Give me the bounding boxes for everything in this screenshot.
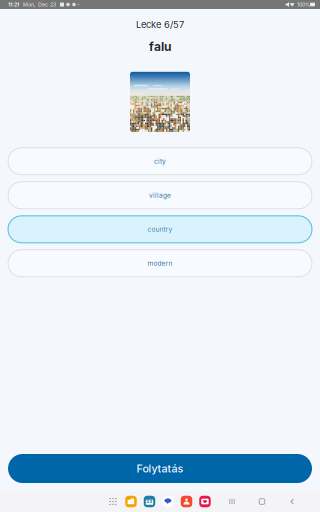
- staticText: city: [154, 157, 166, 165]
- button[interactable]: modern: [8, 250, 312, 277]
- staticText: Mon, Dec 23: [19, 1, 56, 8]
- button[interactable]: Contacts: [180, 495, 192, 507]
- button[interactable]: Folytatás: [0, 454, 320, 483]
- staticText: Lecke 6/57: [136, 19, 184, 30]
- button[interactable]: All apps: [107, 495, 119, 507]
- button[interactable]: Gallery: [199, 495, 211, 507]
- staticText: country: [147, 225, 172, 233]
- button[interactable]: Recent apps: [224, 494, 240, 508]
- staticText: [56, 1, 60, 8]
- button[interactable]: Files: [125, 495, 137, 507]
- staticText: 11:21: [8, 1, 19, 8]
- staticText: village: [149, 191, 171, 199]
- staticText: falu: [149, 39, 171, 54]
- button[interactable]: Messages: [162, 495, 174, 507]
- button[interactable]: Home: [254, 494, 270, 508]
- staticText: 23: [146, 499, 152, 504]
- staticText: modern: [147, 259, 172, 267]
- staticText: Folytatás: [136, 462, 183, 475]
- button[interactable]: country: [8, 216, 312, 243]
- staticText: 100%: [295, 1, 310, 8]
- button[interactable]: village: [8, 182, 312, 209]
- button[interactable]: Calendar: [143, 495, 155, 507]
- button[interactable]: city: [8, 148, 312, 175]
- button[interactable]: Back: [284, 494, 300, 508]
